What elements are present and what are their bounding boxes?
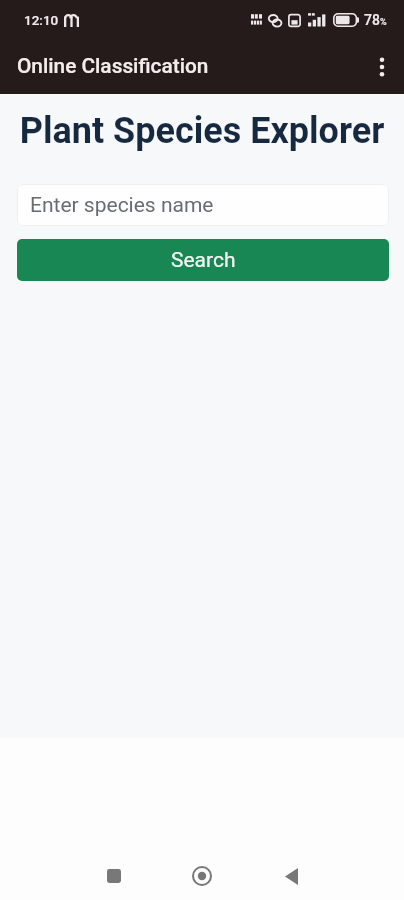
button[interactable]: Back xyxy=(267,852,315,900)
staticText: Enter species name xyxy=(30,193,214,218)
staticText: % xyxy=(380,17,387,28)
staticText: Plant Species Explorer xyxy=(0,110,404,152)
staticText: 12:10 xyxy=(24,12,59,28)
staticText: Search xyxy=(171,248,236,273)
staticText: 78 xyxy=(364,12,380,28)
button[interactable]: Home xyxy=(178,852,226,900)
button[interactable]: More options xyxy=(356,43,404,91)
button[interactable]: Enter species name xyxy=(17,184,389,226)
button[interactable]: Recent apps xyxy=(90,852,138,900)
button[interactable]: Search xyxy=(17,239,389,281)
staticText: Online Classification xyxy=(17,54,209,78)
